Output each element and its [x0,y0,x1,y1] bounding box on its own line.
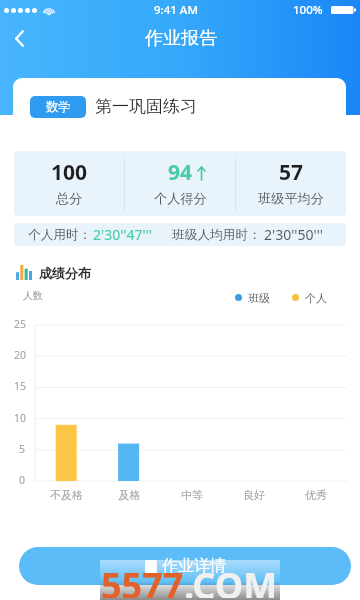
staticText: 总分 [56,190,83,207]
staticText: 班级人均用时： [172,227,261,243]
staticText: 15 [14,379,27,393]
staticText: 5577 [101,561,184,598]
staticText: .COM [184,561,278,598]
staticText: 2'30''50''' [264,225,323,244]
staticText: 25 [14,317,27,331]
staticText: 个人得分 [154,190,207,207]
staticText: 及格 [98,488,161,502]
button[interactable]: 作业详情 [19,547,351,585]
staticText: 0 [19,473,26,487]
staticText: 良好 [223,488,285,502]
staticText: 成绩分布 [39,265,91,280]
staticText: 100% [293,2,323,18]
button[interactable]: Back [5,24,34,53]
staticText: 班级 [248,291,270,304]
staticText: 100 [51,158,88,187]
staticText: 优秀 [285,488,347,502]
staticText: 班级平均分 [258,190,324,207]
staticText: 数学 [46,99,71,115]
staticText: 5 [19,442,26,456]
staticText: 不及格 [35,488,98,502]
staticText: 9:41 AM [154,2,198,18]
staticText: 2'30''47''' [93,225,152,244]
staticText: 57 [279,158,304,187]
staticText: 人数 [23,289,43,302]
staticText: 个人 [305,291,327,304]
staticText: 中等 [161,488,223,502]
staticText: 作业详情 [162,556,226,576]
staticText: 94 [168,158,193,187]
staticText: 作业报告 [145,27,217,50]
staticText: 第一巩固练习 [95,96,197,117]
staticText: 10 [14,411,27,425]
staticText: 个人用时： [28,227,92,243]
staticText: 20 [14,348,27,362]
